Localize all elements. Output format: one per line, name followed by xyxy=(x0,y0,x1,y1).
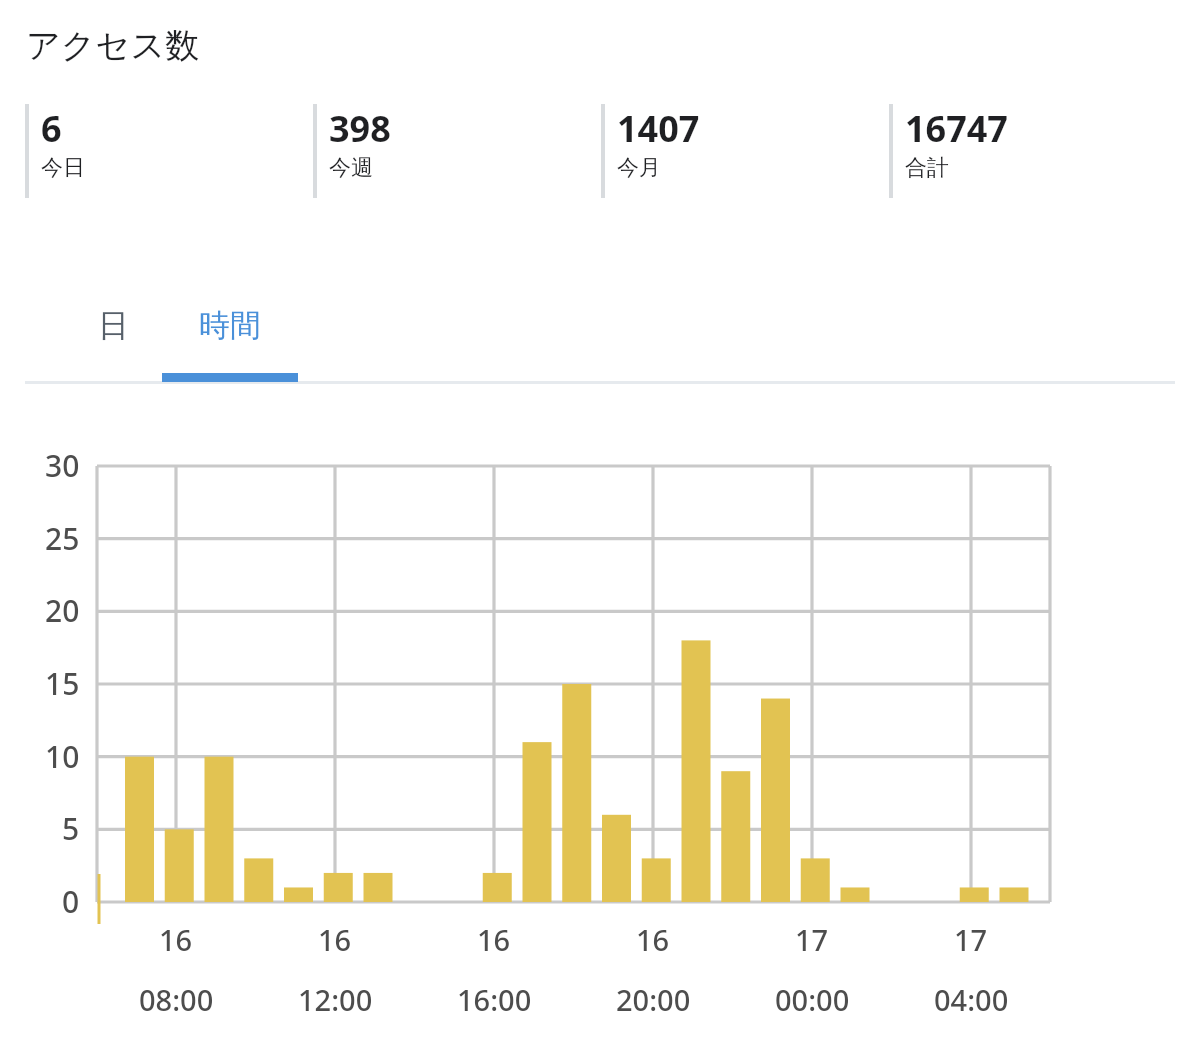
button[interactable]: 日 xyxy=(56,286,170,364)
staticText: 今週 xyxy=(329,154,373,182)
button[interactable]: 398 xyxy=(313,104,583,198)
staticText: 今日 xyxy=(41,154,85,182)
button[interactable]: 1407 xyxy=(601,104,871,198)
button[interactable]: 6 xyxy=(25,104,295,198)
staticText: 16 xyxy=(159,920,193,959)
staticText: 16747 xyxy=(905,104,1008,153)
staticText: 15 xyxy=(45,663,80,704)
staticText: アクセス数 xyxy=(26,24,200,67)
button[interactable]: 16747 xyxy=(889,104,1159,198)
staticText: 08:00 xyxy=(139,980,214,1019)
staticText: 04:00 xyxy=(934,980,1009,1019)
staticText: 20 xyxy=(45,590,80,631)
staticText: 17 xyxy=(954,920,988,959)
staticText: 日 xyxy=(98,306,129,345)
staticText: 6 xyxy=(41,104,62,153)
staticText: 16 xyxy=(318,920,352,959)
staticText: 合計 xyxy=(905,154,949,182)
staticText: 16:00 xyxy=(457,980,532,1019)
button[interactable]: 時間 xyxy=(162,286,298,364)
staticText: 時間 xyxy=(199,306,261,345)
staticText: 17 xyxy=(795,920,829,959)
staticText: 398 xyxy=(329,104,391,153)
staticText: 10 xyxy=(45,736,80,777)
staticText: 25 xyxy=(45,518,80,559)
staticText: 0 xyxy=(62,881,80,922)
staticText: 今月 xyxy=(617,154,661,182)
staticText: 12:00 xyxy=(298,980,373,1019)
staticText: 20:00 xyxy=(616,980,691,1019)
staticText: 5 xyxy=(62,808,80,849)
staticText: 30 xyxy=(45,445,80,486)
staticText: 16 xyxy=(477,920,511,959)
staticText: 1407 xyxy=(617,104,700,153)
staticText: 00:00 xyxy=(775,980,850,1019)
staticText: 16 xyxy=(636,920,670,959)
